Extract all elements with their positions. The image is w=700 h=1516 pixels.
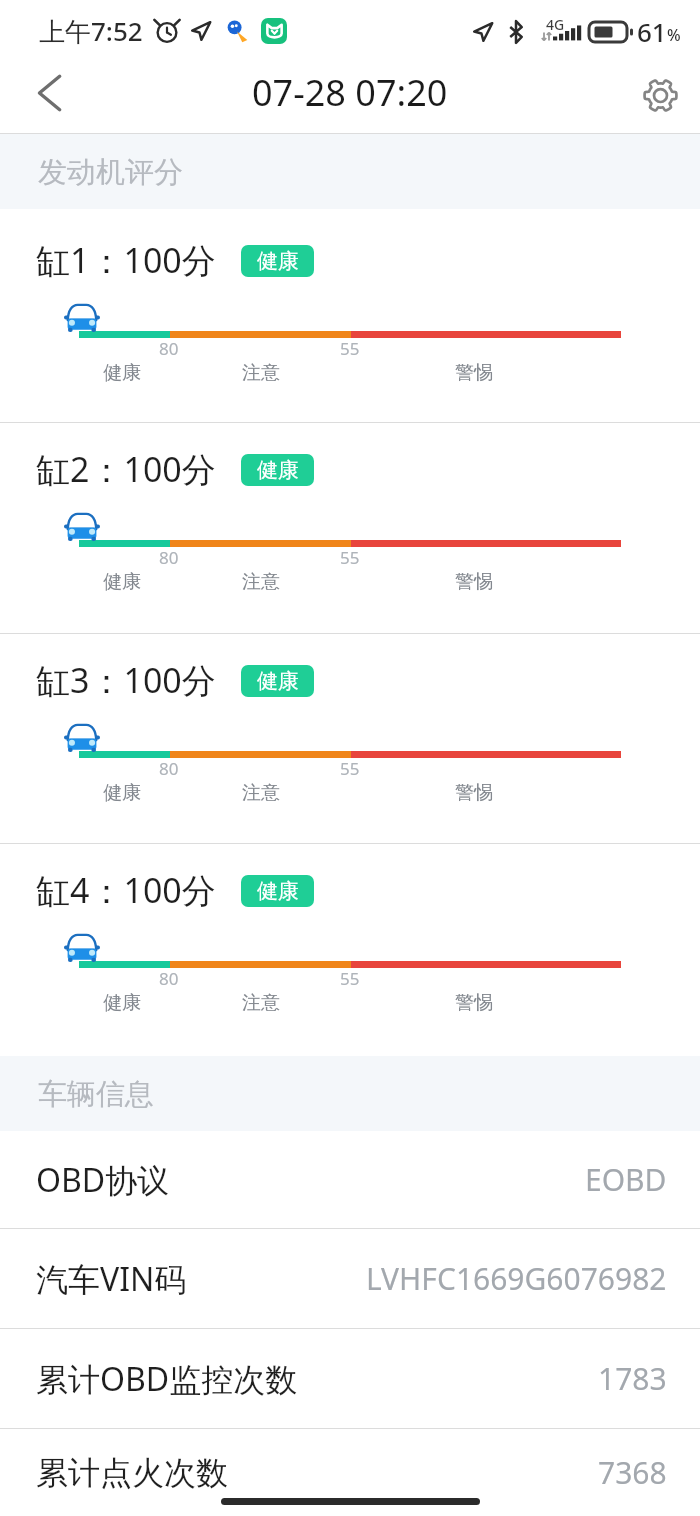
button[interactable]: 缸3：100分 <box>0 634 700 843</box>
button[interactable]: 汽车VIN码 <box>0 1229 700 1328</box>
staticText: OBD协议 <box>36 1158 170 1202</box>
staticText: 累计点火次数 <box>36 1453 228 1493</box>
staticText: % <box>667 24 681 46</box>
staticText: 警惕 <box>455 361 493 385</box>
button[interactable]: 累计OBD监控次数 <box>0 1329 700 1428</box>
staticText: 缸4：100分 <box>36 867 216 913</box>
staticText: LVHFC1669G6076982 <box>366 1258 667 1299</box>
button[interactable]: OBD协议 <box>0 1131 700 1228</box>
staticText: 55 <box>340 967 360 990</box>
staticText: 健康 <box>103 361 141 385</box>
staticText: 警惕 <box>455 570 493 594</box>
button[interactable]: Settings <box>620 62 700 133</box>
staticText: 缸1：100分 <box>36 237 216 283</box>
staticText: 1783 <box>598 1358 667 1399</box>
button[interactable]: 累计点火次数 <box>0 1429 700 1516</box>
staticText: 注意 <box>242 570 280 594</box>
staticText: 80 <box>159 967 179 990</box>
staticText: 7368 <box>598 1452 667 1493</box>
staticText: 健康 <box>257 457 299 483</box>
staticText: 警惕 <box>455 781 493 805</box>
staticText: 注意 <box>242 781 280 805</box>
staticText: 注意 <box>242 991 280 1015</box>
button[interactable]: 缸4：100分 <box>0 844 700 1056</box>
staticText: 07-28 07:20 <box>252 68 448 117</box>
staticText: 发动机评分 <box>38 154 183 191</box>
staticText: 汽车VIN码 <box>36 1257 187 1301</box>
staticText: EOBD <box>585 1159 667 1200</box>
staticText: 健康 <box>103 991 141 1015</box>
staticText: 55 <box>340 757 360 780</box>
staticText: 警惕 <box>455 991 493 1015</box>
staticText: 健康 <box>103 781 141 805</box>
staticText: 55 <box>340 337 360 360</box>
staticText: 80 <box>159 337 179 360</box>
staticText: 55 <box>340 546 360 569</box>
staticText: 61 <box>637 14 667 49</box>
staticText: 4G <box>546 15 565 34</box>
staticText: 健康 <box>257 878 299 904</box>
staticText: 累计OBD监控次数 <box>36 1357 298 1401</box>
staticText: 缸2：100分 <box>36 446 216 492</box>
staticText: 注意 <box>242 361 280 385</box>
staticText: 缸3：100分 <box>36 657 216 703</box>
staticText: 上午7:52 <box>39 13 143 49</box>
button[interactable]: 缸2：100分 <box>0 423 700 633</box>
button[interactable]: Back <box>0 62 94 133</box>
staticText: 健康 <box>257 248 299 274</box>
staticText: 80 <box>159 546 179 569</box>
staticText: 健康 <box>103 570 141 594</box>
button[interactable]: 缸1：100分 <box>0 209 700 422</box>
staticText: 车辆信息 <box>38 1076 154 1113</box>
staticText: 健康 <box>257 668 299 694</box>
staticText: 80 <box>159 757 179 780</box>
